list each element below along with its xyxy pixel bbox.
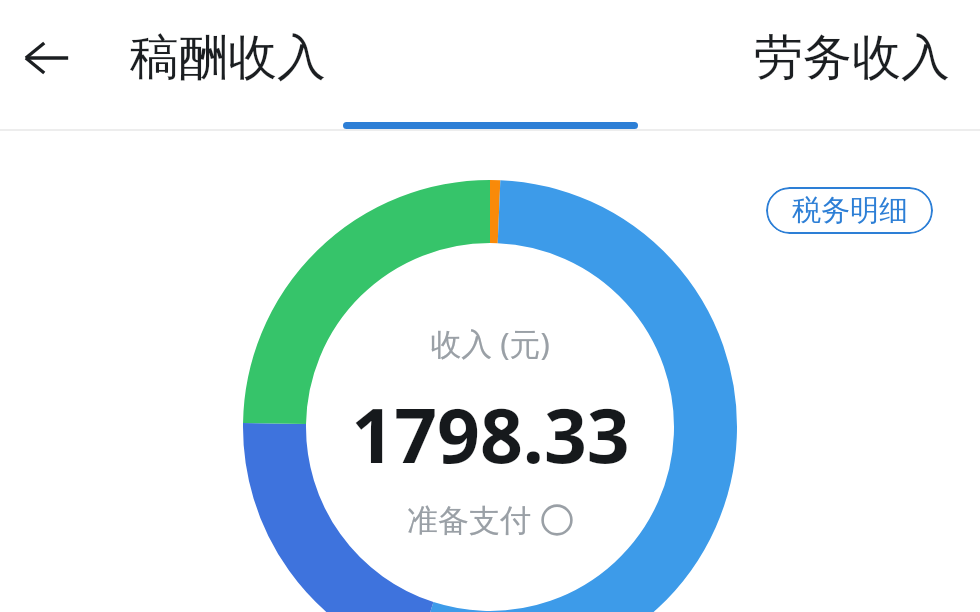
- staticText: 1798.33: [351, 383, 630, 485]
- staticText: 稿酬收入: [130, 27, 326, 89]
- staticText: 收入 (元): [430, 322, 550, 364]
- button[interactable]: 准备支付: [290, 497, 690, 543]
- staticText: 税务明细: [792, 192, 908, 229]
- other: Help: [541, 504, 573, 536]
- staticText: 准备支付: [407, 501, 531, 540]
- button[interactable]: 劳务收入: [740, 22, 950, 94]
- button[interactable]: 稿酬收入: [130, 22, 326, 94]
- staticText: 劳务收入: [754, 27, 950, 89]
- button[interactable]: 税务明细: [766, 187, 933, 234]
- button[interactable]: Back: [22, 33, 72, 83]
